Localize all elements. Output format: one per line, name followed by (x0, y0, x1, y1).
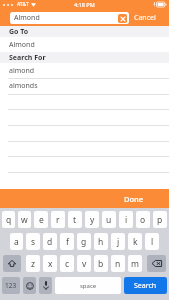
button[interactable]: j (111, 233, 125, 250)
button[interactable]: i (119, 211, 133, 228)
button[interactable] (0, 78, 169, 94)
staticText: e (39, 214, 44, 226)
staticText: j (117, 236, 120, 248)
button[interactable]: Emoji (23, 277, 36, 294)
button[interactable]: b (94, 255, 108, 272)
staticText: r (56, 214, 60, 226)
staticText: Cancel (134, 13, 156, 23)
staticText: 123 (5, 281, 17, 290)
staticText: k (133, 236, 138, 248)
button[interactable] (0, 37, 169, 52)
staticText: Search For (9, 53, 46, 63)
button[interactable]: x (43, 255, 57, 272)
staticText: y (90, 214, 95, 226)
button[interactable]: c (60, 255, 74, 272)
staticText: d (47, 236, 53, 248)
button[interactable]: Backspace (147, 255, 166, 272)
button[interactable]: w (18, 211, 31, 228)
staticText: h (98, 236, 104, 248)
button[interactable]: e (34, 211, 48, 228)
button[interactable]: o (136, 211, 150, 228)
button[interactable]: f (60, 233, 74, 250)
staticText: Search (134, 281, 157, 291)
button[interactable] (0, 26, 169, 37)
button[interactable]: y (85, 211, 99, 228)
button[interactable] (0, 52, 169, 63)
button[interactable]: Search (124, 277, 167, 294)
staticText: u (106, 214, 112, 226)
button[interactable]: Dictation (39, 277, 52, 294)
staticText: Almond (14, 13, 40, 23)
staticText: v (82, 258, 87, 270)
button[interactable]: k (128, 233, 142, 250)
button[interactable]: Cancel (129, 9, 169, 26)
button[interactable]: l (145, 233, 159, 250)
staticText: AT&T (17, 1, 29, 8)
staticText: Done (124, 194, 144, 204)
button[interactable]: n (111, 255, 125, 272)
staticText: p (157, 214, 163, 226)
staticText: n (115, 258, 121, 270)
button[interactable]: a (10, 233, 23, 250)
button[interactable]: t (68, 211, 82, 228)
button[interactable]: q (2, 211, 15, 228)
staticText: Go To (9, 27, 29, 37)
button[interactable]: h (94, 233, 108, 250)
button[interactable]: d (43, 233, 57, 250)
staticText: c (65, 258, 70, 270)
staticText: m (131, 258, 139, 270)
staticText: b (98, 258, 104, 270)
staticText: z (31, 258, 35, 270)
button[interactable]: space (55, 277, 121, 294)
staticText: almond (9, 66, 35, 76)
button[interactable]: 123 (2, 277, 20, 294)
button[interactable]: Done (119, 190, 149, 208)
staticText: f (66, 236, 69, 248)
staticText: a (14, 236, 19, 248)
staticText: g (81, 236, 87, 248)
button[interactable]: z (26, 255, 40, 272)
button[interactable]: u (102, 211, 116, 228)
staticText: l (151, 236, 154, 248)
button[interactable]: Clear text (118, 14, 127, 23)
staticText: space (80, 282, 97, 290)
staticText: q (6, 214, 12, 226)
staticText: w (21, 214, 28, 226)
staticText: i (125, 214, 128, 226)
staticText: o (140, 214, 146, 226)
button[interactable] (0, 63, 169, 78)
button[interactable]: v (77, 255, 91, 272)
button[interactable]: Almond (10, 12, 129, 24)
staticText: x (48, 258, 53, 270)
button[interactable]: m (128, 255, 142, 272)
button[interactable]: r (51, 211, 65, 228)
staticText: 4:18 PM (74, 1, 95, 8)
button[interactable]: Shift (3, 255, 21, 272)
button[interactable]: p (153, 211, 167, 228)
button[interactable]: s (26, 233, 40, 250)
staticText: almonds (9, 81, 38, 91)
staticText: t (73, 214, 77, 226)
staticText: s (31, 236, 36, 248)
button[interactable]: g (77, 233, 91, 250)
staticText: Almond (9, 40, 35, 50)
